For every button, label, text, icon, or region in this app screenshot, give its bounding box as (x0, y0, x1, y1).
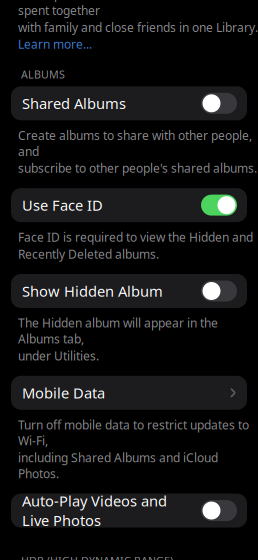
button[interactable]: Use Face ID (11, 188, 247, 222)
staticText: subscribe to other people's shared album… (18, 160, 257, 176)
staticText: Use Face ID (22, 195, 103, 215)
staticText: Show Hidden Album (22, 281, 163, 301)
button[interactable]: Learn more... (18, 36, 92, 52)
staticText: under Utilities. (18, 348, 99, 364)
staticText: Auto-Play Videos and Live Photos (22, 491, 167, 530)
staticText: Learn more... (18, 36, 92, 52)
staticText: with family and close friends in one Lib… (18, 19, 258, 35)
staticText: Create albums to share with other people… (18, 127, 252, 159)
staticText: Mobile Data (22, 383, 105, 403)
staticText: The Hidden album will appear in the Albu… (18, 315, 218, 347)
staticText: Face ID is required to view the Hidden a… (18, 229, 253, 245)
staticText: including Shared Albums and iCloud Photo… (18, 450, 218, 482)
staticText: ALBUMS (21, 67, 65, 81)
staticText: HDR (HIGH DYNAMIC RANGE) (21, 553, 173, 560)
staticText: Share photos and videos from moments spe… (18, 0, 241, 18)
button[interactable]: Mobile Data (11, 376, 247, 410)
button[interactable]: Show Hidden Album (11, 274, 247, 308)
button[interactable]: Shared Albums (11, 86, 247, 120)
staticText: Shared Albums (22, 94, 126, 113)
button[interactable]: Auto-Play Videos and Live Photos (11, 493, 247, 527)
staticText: Turn off mobile data to restrict updates… (18, 417, 249, 449)
staticText: Recently Deleted albums. (18, 246, 159, 262)
